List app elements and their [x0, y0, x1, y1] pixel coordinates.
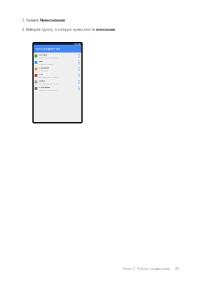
staticText: Заявка — [39, 79, 45, 82]
button[interactable]: Договор — [33, 53, 82, 59]
staticText: Акт — [39, 72, 43, 76]
staticText: 25 — [175, 267, 179, 271]
staticText: Выполненные работы — [39, 76, 60, 78]
staticText: Накладная — [39, 66, 49, 69]
staticText: 3. — [22, 18, 25, 22]
staticText: Договор — [39, 53, 47, 56]
staticText: Оплата товара — [39, 63, 53, 65]
staticText: Счёт — [39, 59, 43, 63]
button[interactable]: Накладная — [33, 66, 82, 72]
staticText: изменения — [96, 27, 115, 32]
staticText: Служебная — [39, 85, 50, 89]
staticText: Отгрузка — [39, 69, 48, 72]
staticText: Нажмите — [26, 18, 40, 22]
staticText: Внутренний документ — [39, 82, 59, 85]
staticText: Документ основания — [39, 56, 58, 59]
button[interactable]: Служебная — [33, 85, 82, 92]
staticText: Типы документов — [35, 47, 60, 51]
button[interactable]: Акт — [33, 72, 82, 79]
staticText: Глава 3. Работа с документами — [123, 267, 170, 271]
staticText: . — [65, 18, 66, 22]
button[interactable]: Заявка — [33, 79, 82, 85]
staticText: Выберите группу, в которую нужно внести — [26, 27, 96, 32]
staticText: 4. — [22, 27, 25, 32]
button[interactable]: Счёт — [33, 59, 82, 66]
staticText: . — [115, 27, 116, 32]
staticText: Записка сотрудника — [39, 89, 57, 91]
staticText: Наименования — [40, 18, 65, 22]
